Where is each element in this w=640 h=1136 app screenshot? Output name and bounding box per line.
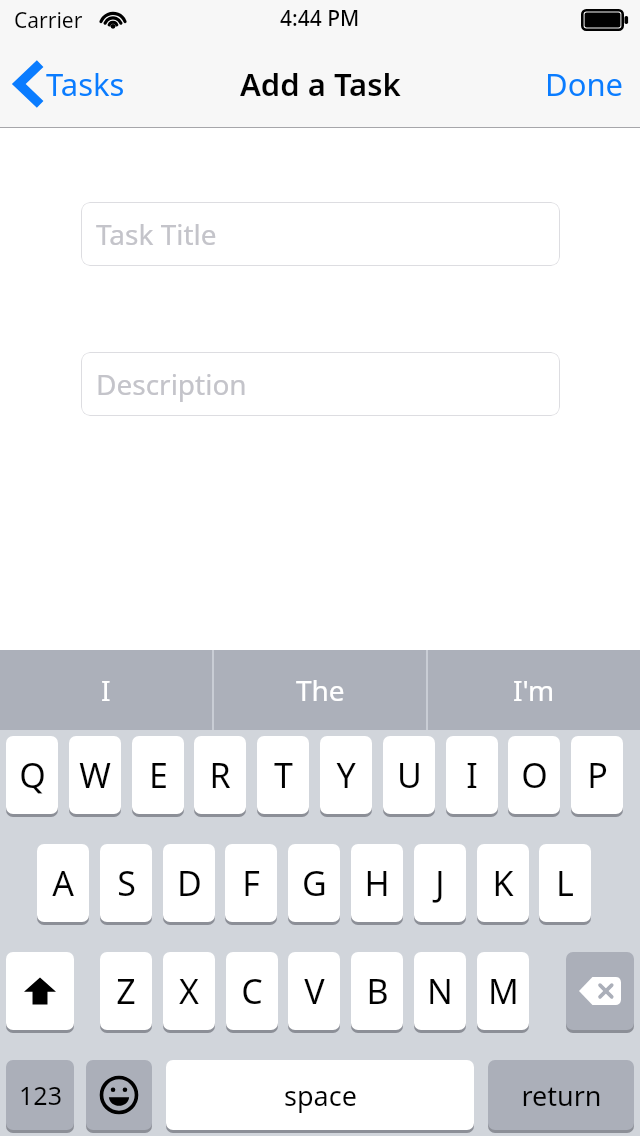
staticText: K — [492, 860, 514, 906]
button[interactable]: F — [225, 844, 277, 922]
button[interactable]: 123 — [6, 1060, 74, 1130]
button[interactable]: A — [37, 844, 89, 922]
button[interactable]: I — [446, 736, 498, 814]
staticText: E — [149, 752, 168, 798]
staticText: R — [209, 752, 231, 798]
staticText: Tasks — [46, 63, 125, 105]
staticText: B — [366, 968, 389, 1014]
button[interactable]: P — [571, 736, 623, 814]
button[interactable]: S — [100, 844, 152, 922]
staticText: The — [296, 671, 345, 709]
button[interactable]: I — [0, 650, 212, 730]
button[interactable]: Task Title — [81, 202, 560, 266]
staticText: G — [302, 860, 327, 906]
button[interactable]: N — [414, 952, 466, 1030]
staticText: I — [466, 752, 478, 798]
staticText: Y — [336, 752, 356, 798]
staticText: Description — [96, 365, 247, 403]
button[interactable]: H — [351, 844, 403, 922]
staticText: P — [587, 752, 608, 798]
staticText: return — [521, 1077, 602, 1114]
staticText: W — [79, 752, 111, 798]
staticText: Carrier — [14, 6, 83, 35]
staticText: I'm — [513, 671, 555, 709]
button[interactable]: L — [539, 844, 591, 922]
button[interactable]: D — [163, 844, 215, 922]
staticText: V — [304, 968, 325, 1014]
button[interactable]: Tasks — [0, 40, 141, 128]
staticText: X — [179, 968, 199, 1014]
staticText: Task Title — [96, 215, 217, 253]
staticText: Q — [19, 752, 46, 798]
button[interactable]: U — [383, 736, 435, 814]
button[interactable]: The — [214, 650, 426, 730]
button[interactable]: G — [288, 844, 340, 922]
button[interactable]: Description — [81, 352, 560, 416]
button[interactable]: V — [288, 952, 340, 1030]
button[interactable]: Done — [529, 40, 640, 128]
staticText: Z — [116, 968, 136, 1014]
staticText: D — [177, 860, 202, 906]
button[interactable]: O — [508, 736, 560, 814]
staticText: I — [101, 671, 111, 709]
staticText: H — [364, 860, 390, 906]
staticText: space — [284, 1077, 357, 1114]
button[interactable]: Y — [320, 736, 372, 814]
button[interactable]: return — [488, 1060, 634, 1130]
button[interactable]: R — [194, 736, 246, 814]
staticText: O — [521, 752, 548, 798]
button[interactable]: Shift — [6, 952, 74, 1030]
button[interactable]: E — [132, 736, 184, 814]
staticText: A — [52, 860, 74, 906]
staticText: M — [488, 968, 519, 1014]
button[interactable]: J — [414, 844, 466, 922]
staticText: T — [274, 752, 293, 798]
staticText: U — [397, 752, 422, 798]
button[interactable]: K — [477, 844, 529, 922]
button[interactable]: T — [257, 736, 309, 814]
button[interactable]: X — [163, 952, 215, 1030]
staticText: Done — [545, 63, 624, 105]
button[interactable]: I'm — [428, 650, 640, 730]
staticText: L — [556, 860, 574, 906]
staticText: S — [117, 860, 136, 906]
staticText: 123 — [19, 1078, 62, 1112]
staticText: J — [435, 860, 445, 906]
button[interactable]: Z — [100, 952, 152, 1030]
button[interactable]: Emoji keyboard — [86, 1060, 152, 1130]
button[interactable]: B — [351, 952, 403, 1030]
button[interactable]: C — [226, 952, 278, 1030]
button[interactable]: space — [166, 1060, 474, 1130]
staticText: C — [241, 968, 263, 1014]
staticText: F — [242, 860, 260, 906]
button[interactable]: W — [69, 736, 121, 814]
button[interactable]: Backspace — [566, 952, 634, 1030]
button[interactable]: M — [477, 952, 529, 1030]
staticText: N — [427, 968, 453, 1014]
staticText: 4:44 PM — [280, 4, 360, 33]
staticText: Add a Task — [240, 63, 401, 105]
button[interactable]: Q — [6, 736, 58, 814]
